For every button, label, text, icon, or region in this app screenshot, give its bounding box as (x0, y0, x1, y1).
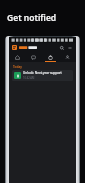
button[interactable]: Profile (59, 52, 76, 62)
button[interactable]: App logo (12, 45, 17, 50)
button[interactable]: Home (9, 52, 25, 62)
button[interactable]: Unlock: Next-year support (12, 70, 73, 81)
staticText: 10:42 AM (23, 76, 35, 80)
button[interactable]: Search (59, 45, 65, 51)
button[interactable]: More options (67, 45, 73, 51)
staticText: Today (13, 65, 22, 69)
button[interactable]: Messages (25, 52, 42, 62)
staticText: Get notified (7, 12, 57, 24)
button[interactable]: Orders (42, 52, 59, 62)
staticText: Unlock: Next-year support (23, 71, 62, 75)
